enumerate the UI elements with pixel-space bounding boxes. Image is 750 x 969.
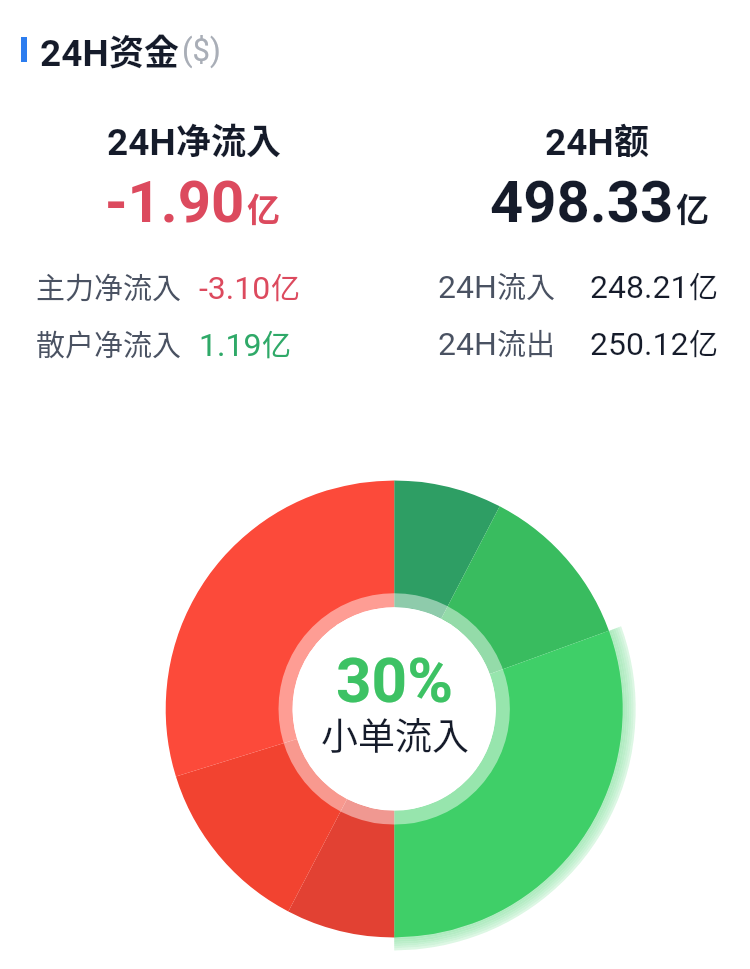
button[interactable]: 24H xyxy=(12,18,229,81)
other: 24H fund flow donut chart xyxy=(0,0,750,969)
staticText: 24H xyxy=(545,121,614,164)
staticText: 流入 xyxy=(497,264,556,306)
staticText: 小单流入 xyxy=(321,707,469,761)
staticText: 额 xyxy=(614,113,650,164)
staticText: 248.21 xyxy=(590,268,689,306)
staticText: 亿 xyxy=(689,321,719,363)
button[interactable]: 30% xyxy=(293,607,496,810)
staticText: 24H xyxy=(107,121,176,164)
staticText: 24H xyxy=(40,32,109,75)
staticText: 亿 xyxy=(676,184,709,232)
staticText: 流出 xyxy=(497,321,556,363)
staticText: 净流入 xyxy=(176,113,282,164)
staticText: 资金 xyxy=(109,24,180,75)
staticText: 主力净流入 xyxy=(36,265,182,307)
staticText: 亿 xyxy=(271,265,301,307)
staticText: 498.33 xyxy=(490,168,674,236)
staticText: ($) xyxy=(182,32,221,68)
staticText: 亿 xyxy=(247,184,280,232)
staticText: 24H xyxy=(438,325,497,363)
staticText: 30% xyxy=(336,644,453,717)
staticText: 24H xyxy=(438,268,497,306)
staticText: 250.12 xyxy=(590,325,689,363)
staticText: 亿 xyxy=(689,264,719,306)
staticText: -1.90 xyxy=(105,168,245,236)
staticText: 1.19 xyxy=(199,326,262,364)
staticText: 散户净流入 xyxy=(36,322,182,364)
staticText: 亿 xyxy=(262,322,292,364)
staticText: -3.10 xyxy=(199,269,271,307)
